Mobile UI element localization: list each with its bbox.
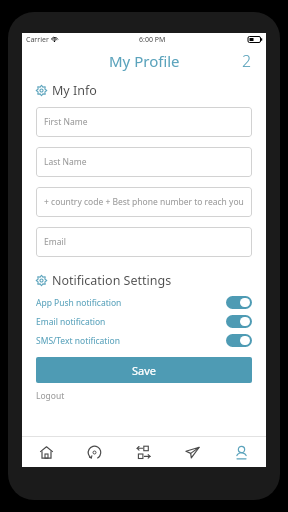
button[interactable]: Email notification: [36, 314, 252, 329]
button[interactable]: Logout: [36, 390, 65, 402]
button[interactable]: Profile: [217, 437, 266, 467]
button[interactable]: App Push notification: [36, 295, 252, 310]
staticText: Last Name: [44, 156, 87, 168]
button[interactable]: SMS/Text notification: [36, 333, 252, 348]
staticText: 2: [242, 50, 252, 72]
staticText: App Push notification: [36, 297, 122, 309]
staticText: Carrier: [26, 35, 49, 45]
button[interactable]: Email: [36, 227, 252, 257]
staticText: 6:00 PM: [139, 35, 166, 45]
button[interactable]: History: [70, 437, 119, 467]
staticText: + country code + Best phone number to re…: [44, 196, 244, 208]
staticText: Notification Settings: [52, 272, 172, 289]
button[interactable]: Home: [22, 437, 70, 467]
button[interactable]: Step 2: [242, 50, 252, 72]
staticText: SMS/Text notification: [36, 335, 121, 347]
staticText: My Info: [52, 82, 97, 99]
button[interactable]: Send: [168, 437, 217, 467]
staticText: Email: [44, 236, 66, 248]
button[interactable]: Save: [36, 357, 252, 383]
staticText: First Name: [44, 116, 88, 128]
staticText: Email notification: [36, 316, 106, 328]
button[interactable]: Last Name: [36, 147, 252, 177]
staticText: Save: [132, 363, 157, 378]
button[interactable]: Transfer: [119, 437, 168, 467]
button[interactable]: First Name: [36, 107, 252, 137]
button[interactable]: + country code + Best phone number to re…: [36, 187, 252, 217]
staticText: Logout: [36, 390, 65, 402]
staticText: My Profile: [109, 51, 180, 71]
